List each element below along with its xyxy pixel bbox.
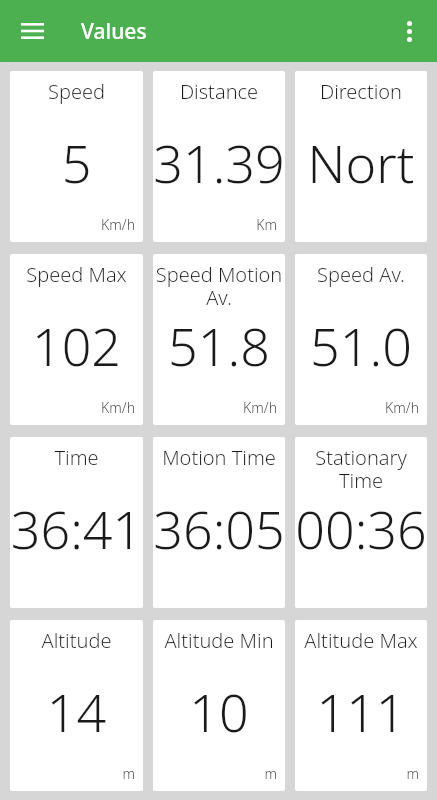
staticText: Values	[81, 17, 147, 46]
staticText: 31.39	[153, 127, 285, 198]
button[interactable]: Speed Motion Av.	[153, 254, 285, 425]
staticText: 14	[10, 676, 143, 747]
staticText: North	[295, 127, 427, 198]
staticText: 36:41	[10, 493, 143, 564]
button[interactable]: Speed Av.	[295, 254, 427, 425]
staticText: Speed Motion Av.	[153, 261, 285, 311]
button[interactable]: Time	[10, 437, 143, 608]
staticText: m	[122, 764, 135, 783]
staticText: Km	[256, 215, 277, 234]
button[interactable]: Stationary Time	[295, 437, 427, 608]
staticText: 51.8	[153, 310, 285, 381]
staticText: Km/h	[385, 398, 419, 417]
staticText: 5	[10, 127, 143, 198]
staticText: Motion Time	[153, 444, 285, 471]
staticText: m	[264, 764, 277, 783]
button[interactable]: Open navigation menu	[10, 9, 54, 53]
button[interactable]: Speed	[10, 71, 143, 242]
button[interactable]: Altitude	[10, 620, 143, 791]
button[interactable]: Altitude Max	[295, 620, 427, 791]
staticText: Altitude Min	[153, 627, 285, 654]
staticText: 51.0	[295, 310, 427, 381]
button[interactable]: Altitude Min	[153, 620, 285, 791]
staticText: Speed Max	[10, 261, 143, 288]
staticText: Km/h	[243, 398, 277, 417]
button[interactable]: Distance	[153, 71, 285, 242]
staticText: Km/h	[101, 398, 135, 417]
staticText: 102	[10, 310, 143, 381]
staticText: Direction	[295, 78, 427, 105]
button[interactable]: Motion Time	[153, 437, 285, 608]
button[interactable]: Speed Max	[10, 254, 143, 425]
staticText: m	[406, 764, 419, 783]
staticText: 36:05	[153, 493, 285, 564]
staticText: 111	[295, 676, 427, 747]
staticText: 00:36	[295, 493, 427, 564]
staticText: Stationary Time	[295, 444, 427, 494]
staticText: Time	[10, 444, 143, 471]
staticText: Altitude	[10, 627, 143, 654]
staticText: 10	[153, 676, 285, 747]
staticText: Speed Av.	[295, 261, 427, 288]
staticText: Speed	[10, 78, 143, 105]
button[interactable]: Direction	[295, 71, 427, 242]
staticText: Altitude Max	[295, 627, 427, 654]
staticText: Km/h	[101, 215, 135, 234]
button[interactable]: More options	[387, 9, 431, 53]
staticText: Distance	[153, 78, 285, 105]
